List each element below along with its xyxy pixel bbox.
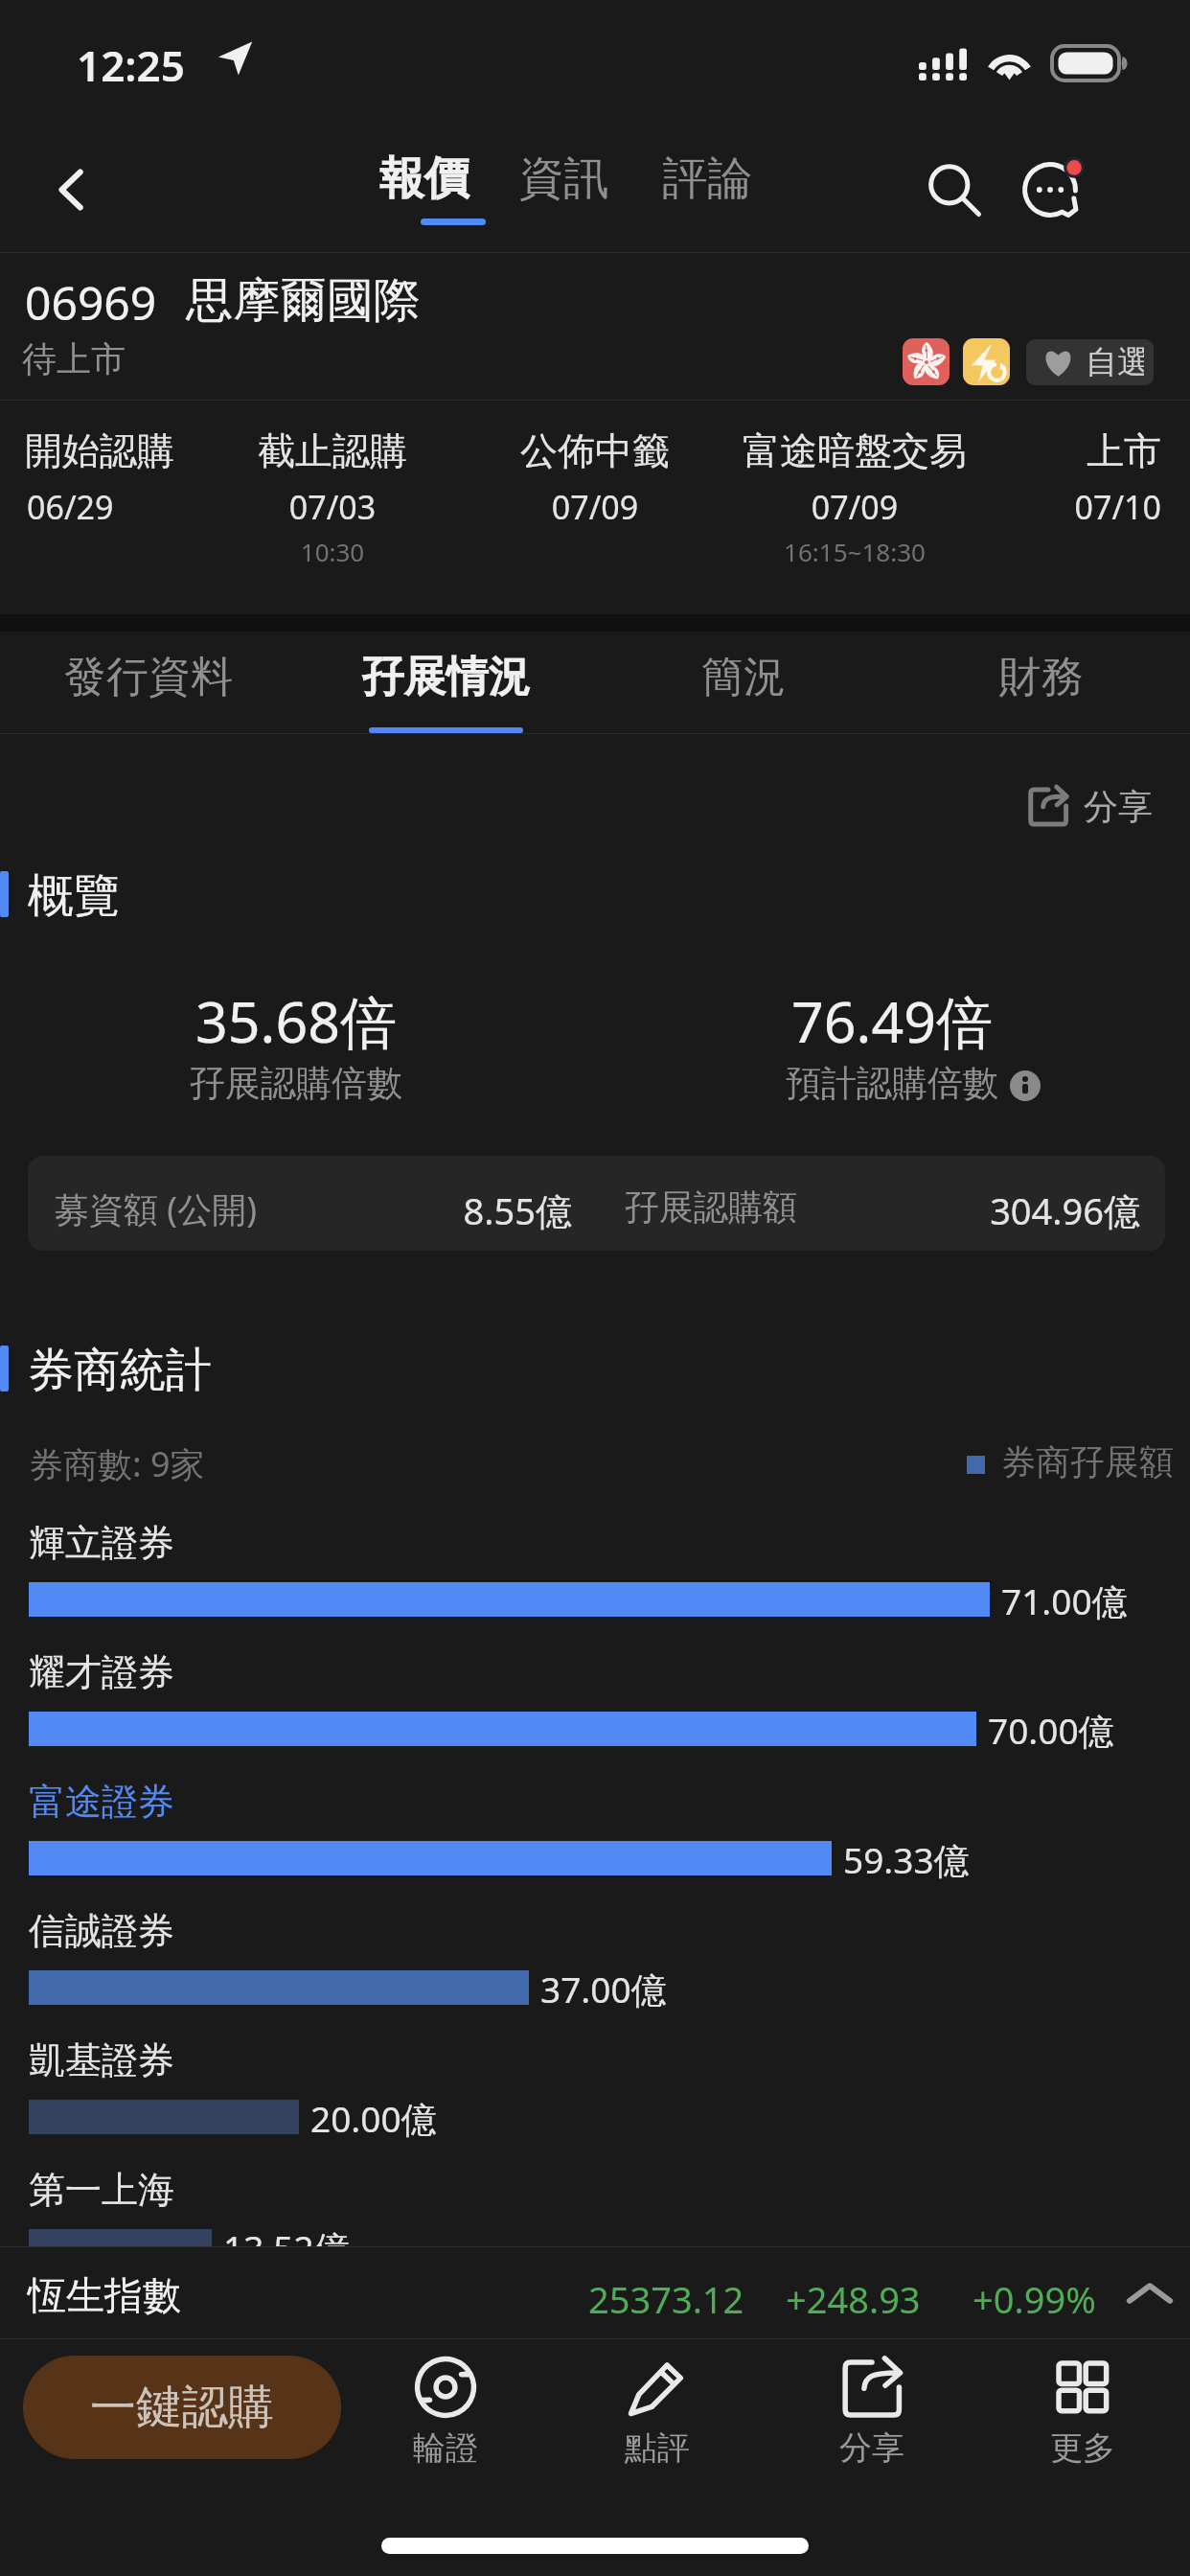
staticText: 上市 bbox=[586, 427, 1161, 474]
staticText: 截止認購 bbox=[0, 427, 668, 474]
staticText: 輪證 bbox=[413, 2427, 478, 2469]
staticText: 資訊 bbox=[518, 150, 609, 207]
staticText: 待上市 bbox=[22, 337, 126, 380]
button[interactable]: 自選 bbox=[1026, 339, 1154, 385]
button[interactable]: 一鍵認購 bbox=[23, 2356, 341, 2459]
button[interactable]: 分享 bbox=[781, 2341, 963, 2475]
staticText: 76.49倍 bbox=[557, 982, 1190, 1060]
staticText: 70.00億 bbox=[988, 1706, 1114, 1755]
staticText: 孖展情況 bbox=[297, 651, 595, 703]
staticText: 財務 bbox=[892, 651, 1190, 703]
button[interactable]: Comments bbox=[1012, 148, 1096, 232]
staticText: 16:15~18:30 bbox=[519, 535, 1190, 568]
button[interactable]: 分享 bbox=[1030, 781, 1153, 831]
staticText: 點評 bbox=[625, 2427, 690, 2469]
staticText: 輝立證券 bbox=[29, 1520, 174, 1566]
button[interactable]: 簡況 bbox=[595, 632, 892, 733]
staticText: 37.00億 bbox=[540, 1965, 667, 2013]
staticText: 評論 bbox=[662, 150, 753, 207]
staticText: 發行資料 bbox=[0, 651, 297, 703]
staticText: 自選 bbox=[1086, 342, 1144, 382]
staticText: 25373.12 bbox=[588, 2274, 744, 2324]
staticText: 公佈中籤 bbox=[260, 427, 930, 474]
staticText: 12:25 bbox=[77, 36, 185, 94]
staticText: 思摩爾國際 bbox=[186, 271, 421, 331]
button[interactable]: 資訊 bbox=[547, 126, 638, 252]
staticText: 一鍵認購 bbox=[90, 2379, 274, 2436]
button[interactable]: 發行資料 bbox=[0, 632, 297, 733]
button[interactable]: 輪證 bbox=[355, 2341, 537, 2475]
staticText: +248.93 bbox=[786, 2274, 921, 2324]
staticText: 分享 bbox=[1084, 785, 1153, 828]
staticText: 06/29 bbox=[27, 485, 114, 529]
staticText: 信誠證券 bbox=[29, 1908, 174, 1954]
staticText: 恆生指數 bbox=[28, 2271, 181, 2319]
staticText: 第一上海 bbox=[29, 2167, 174, 2213]
staticText: 分享 bbox=[839, 2427, 904, 2469]
staticText: 開始認購 bbox=[25, 427, 174, 474]
button[interactable]: 財務 bbox=[892, 632, 1190, 733]
staticText: 35.68倍 bbox=[0, 982, 631, 1060]
staticText: 概覽 bbox=[28, 867, 120, 925]
staticText: 耀才證券 bbox=[29, 1649, 174, 1695]
staticText: 06969 bbox=[25, 271, 157, 333]
staticText: 募資額 (公開) bbox=[55, 1185, 257, 1232]
staticText: 孖展認購倍數 bbox=[0, 1061, 631, 1106]
staticText: 8.55億 bbox=[189, 1185, 572, 1235]
staticText: +0.99% bbox=[973, 2274, 1096, 2324]
staticText: 券商統計 bbox=[28, 1342, 212, 1399]
staticText: 券商數: 9家 bbox=[29, 1440, 205, 1487]
staticText: 71.00億 bbox=[1001, 1576, 1128, 1625]
staticText: 券商孖展額 bbox=[1001, 1440, 1174, 1483]
staticText: 07/10 bbox=[586, 485, 1161, 529]
staticText: 07/03 bbox=[0, 485, 668, 529]
staticText: 13.52億 bbox=[223, 2223, 350, 2272]
staticText: 07/09 bbox=[260, 485, 930, 529]
button[interactable]: Search bbox=[912, 148, 996, 232]
button[interactable]: Back bbox=[19, 126, 125, 252]
staticText: 富途暗盤交易 bbox=[519, 427, 1190, 474]
button[interactable]: 報價 bbox=[407, 126, 498, 252]
button[interactable]: 孖展情況 bbox=[297, 632, 595, 733]
button[interactable]: 恆生指數 bbox=[0, 2247, 1190, 2338]
staticText: 凱基證券 bbox=[29, 2037, 174, 2083]
staticText: 59.33億 bbox=[843, 1835, 970, 1884]
staticText: 10:30 bbox=[0, 535, 668, 568]
staticText: 報價 bbox=[378, 150, 469, 207]
button[interactable]: 更多 bbox=[992, 2341, 1174, 2475]
staticText: 富途證券 bbox=[29, 1779, 174, 1825]
button[interactable]: 評論 bbox=[691, 126, 782, 252]
staticText: 07/09 bbox=[519, 485, 1190, 529]
staticText: 304.96億 bbox=[757, 1185, 1140, 1235]
staticText: 簡況 bbox=[595, 651, 892, 703]
button[interactable]: 點評 bbox=[566, 2341, 748, 2475]
staticText: 更多 bbox=[1050, 2427, 1115, 2469]
staticText: 預計認購倍數 bbox=[786, 1061, 998, 1106]
staticText: 孖展認購額 bbox=[625, 1185, 797, 1229]
staticText: 20.00億 bbox=[310, 2094, 437, 2143]
